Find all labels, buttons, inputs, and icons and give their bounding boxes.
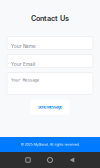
staticText: Your Name: [11, 44, 36, 49]
staticText: Your Message: [11, 78, 39, 82]
button[interactable]: Your Message: [7, 73, 93, 95]
button[interactable]: Recent apps: [17, 152, 39, 168]
button[interactable]: Send Message: [30, 100, 69, 115]
staticText: Send Message: [38, 105, 62, 109]
staticText: Contact Us: [31, 14, 69, 23]
button[interactable]: Your Name: [7, 37, 93, 50]
button[interactable]: Home: [39, 152, 61, 168]
staticText: Your Email: [11, 62, 35, 67]
staticText: © 2025 MyBrand. All rights reserved.: [20, 142, 79, 147]
button[interactable]: Back: [61, 152, 83, 168]
button[interactable]: Your Email: [7, 55, 93, 68]
